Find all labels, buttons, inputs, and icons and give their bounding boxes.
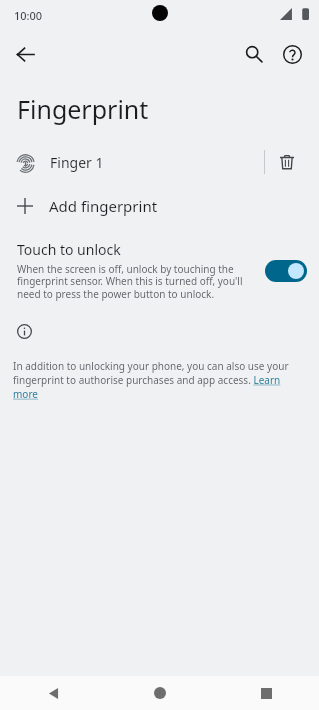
button[interactable]: Back <box>6 35 44 73</box>
button[interactable]: Finger 1 <box>0 140 264 184</box>
button[interactable]: Help <box>273 35 311 73</box>
button[interactable]: Add fingerprint <box>0 184 319 228</box>
staticText: 10:00 <box>14 8 43 23</box>
button[interactable]: Delete fingerprint <box>265 140 309 184</box>
button[interactable]: In addition to unlocking your phone, you… <box>13 359 306 401</box>
staticText: In addition to unlocking your phone, you… <box>13 359 306 401</box>
staticText: When the screen is off, unlock by touchi… <box>17 262 254 301</box>
button[interactable]: Search <box>235 35 273 73</box>
staticText: Add fingerprint <box>49 196 158 216</box>
button[interactable]: Recent apps <box>213 676 319 710</box>
button[interactable]: Home <box>107 676 213 710</box>
button[interactable]: Back <box>0 676 107 710</box>
staticText: Fingerprint <box>17 92 149 126</box>
button[interactable]: Touch to unlock <box>0 240 319 301</box>
staticText: Touch to unlock <box>17 240 121 259</box>
button[interactable]: Touch to unlock toggle <box>264 256 308 286</box>
staticText: Finger 1 <box>50 153 104 172</box>
